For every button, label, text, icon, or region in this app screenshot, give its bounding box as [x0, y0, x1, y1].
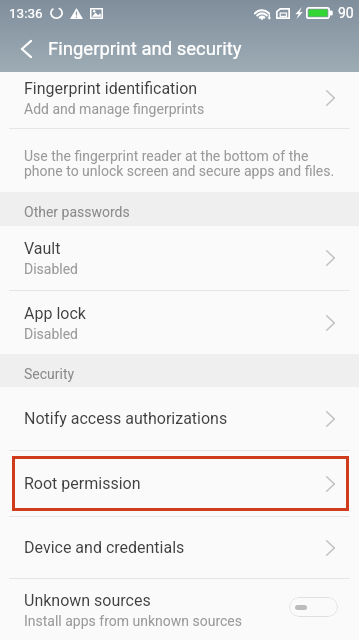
staticText: Fingerprint identification: [24, 79, 198, 98]
staticText: 13:36: [9, 5, 43, 21]
button[interactable]: Vault: [0, 226, 359, 290]
staticText: App lock: [24, 304, 86, 323]
staticText: Other passwords: [24, 204, 130, 220]
staticText: Vault: [24, 239, 61, 258]
button[interactable]: Unknown sources: [0, 579, 359, 640]
button[interactable]: Toggle unknown sources: [289, 597, 338, 617]
button[interactable]: Device and credentials: [0, 517, 359, 578]
button[interactable]: App lock: [0, 291, 359, 354]
staticText: Unknown sources: [24, 591, 151, 610]
button[interactable]: Notify access authorizations: [0, 387, 359, 450]
staticText: Install apps from unknown sources: [24, 613, 242, 629]
staticText: Root permission: [24, 474, 141, 493]
button[interactable]: Root permission: [0, 451, 359, 516]
button[interactable]: Fingerprint identification: [0, 72, 359, 128]
staticText: Add and manage fingerprints: [24, 101, 205, 117]
staticText: Disabled: [24, 326, 79, 342]
button[interactable]: Back: [0, 26, 48, 72]
staticText: 90: [338, 5, 354, 21]
staticText: Notify access authorizations: [24, 409, 228, 428]
staticText: Security: [24, 366, 75, 382]
staticText: Fingerprint and security: [48, 38, 242, 60]
staticText: Disabled: [24, 261, 79, 277]
staticText: Device and credentials: [24, 538, 185, 557]
staticText: Use the fingerprint reader at the bottom…: [24, 148, 335, 180]
